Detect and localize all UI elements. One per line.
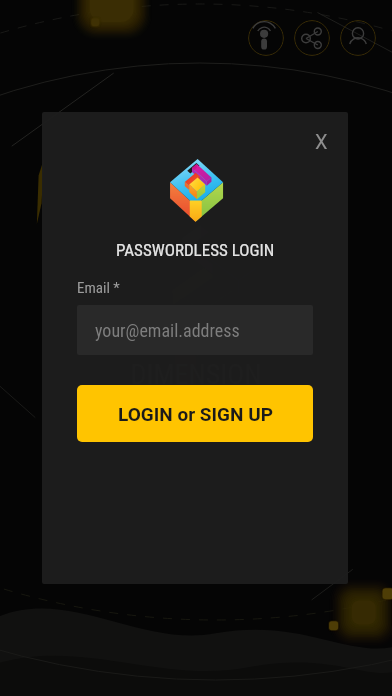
button[interactable]: Account [340,20,376,56]
staticText: LOGIN or SIGN UP [118,403,273,425]
button[interactable]: LOGIN or SIGN UP [77,385,313,442]
staticText: X [315,130,328,153]
button[interactable]: your@email.address [77,305,313,355]
button[interactable]: Close [304,124,338,158]
staticText: your@email.address [95,320,240,341]
button[interactable]: Share [294,20,330,56]
button[interactable]: Podcasts [248,20,284,56]
staticText: Email * [77,279,120,297]
staticText: PASSWORDLESS LOGIN [116,240,275,260]
staticText: DIMENSION [0,358,392,391]
